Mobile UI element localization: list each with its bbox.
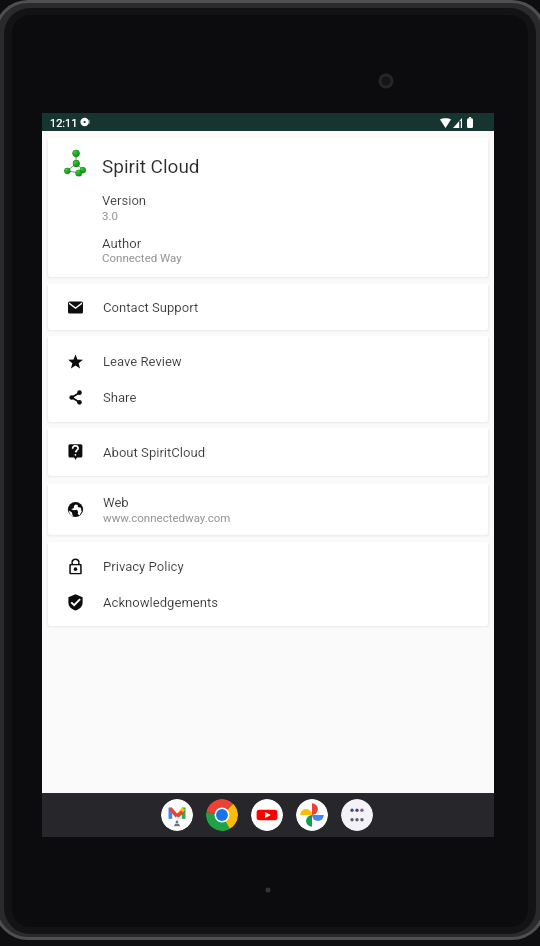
staticText: Spirit Cloud	[102, 155, 200, 177]
staticText: Author	[102, 236, 142, 251]
button[interactable]: All apps	[341, 799, 373, 831]
staticText: 12:11	[50, 117, 78, 130]
staticText: Contact Support	[103, 300, 199, 315]
staticText: Share	[103, 390, 137, 405]
staticText: About SpiritCloud	[103, 445, 206, 460]
staticText: www.connectedway.com	[103, 511, 231, 524]
button[interactable]: About SpiritCloud	[48, 434, 488, 470]
button[interactable]: Leave Review	[48, 343, 488, 379]
staticText: Connected Way	[102, 251, 182, 264]
button[interactable]: Acknowledgements	[48, 584, 488, 620]
staticText: Leave Review	[103, 354, 182, 369]
staticText: Acknowledgements	[103, 595, 219, 610]
button[interactable]: Web	[48, 491, 488, 528]
button[interactable]: Gmail	[161, 799, 193, 831]
button[interactable]: Privacy Policy	[48, 548, 488, 584]
button[interactable]: Share	[48, 379, 488, 415]
button[interactable]: Photos	[296, 799, 328, 831]
button[interactable]: Contact Support	[48, 289, 488, 325]
staticText: Version	[102, 193, 147, 208]
button[interactable]: Chrome	[206, 799, 238, 831]
button[interactable]: YouTube	[251, 799, 283, 831]
staticText: Web	[103, 495, 129, 510]
staticText: Privacy Policy	[103, 559, 184, 574]
staticText: 3.0	[102, 209, 118, 222]
